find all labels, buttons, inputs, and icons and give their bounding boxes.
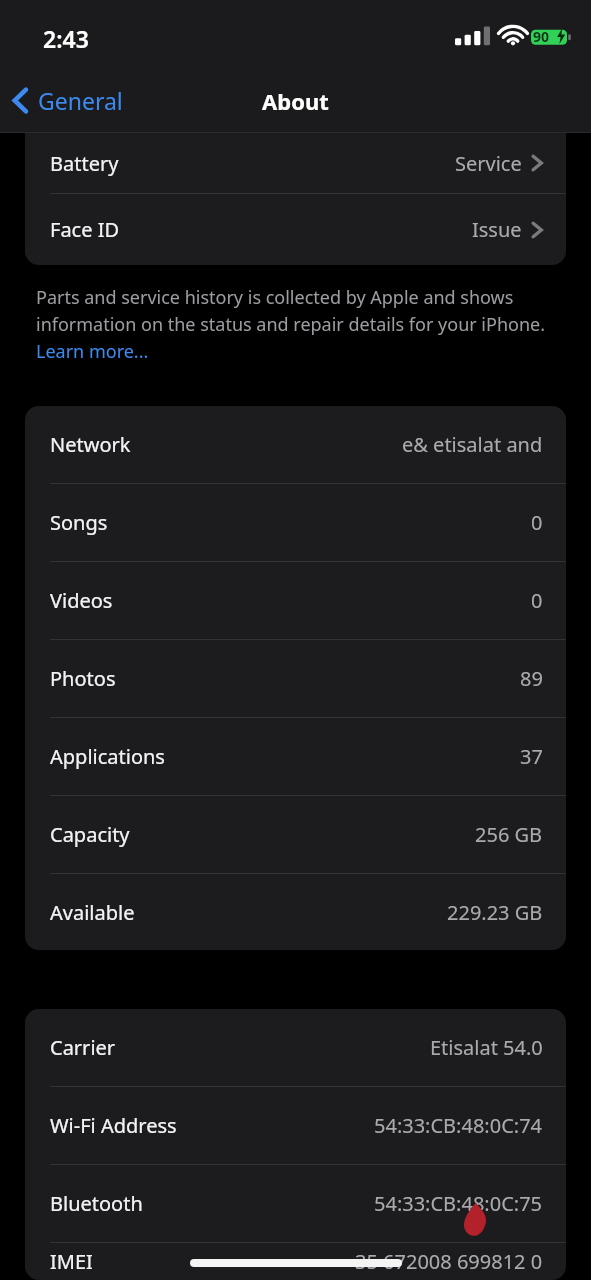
- staticText: 256 GB: [475, 821, 543, 848]
- staticText: General: [38, 85, 123, 116]
- staticText: 90: [533, 27, 550, 46]
- button[interactable]: Available: [25, 874, 566, 950]
- staticText: e& etisalat and: [402, 431, 543, 458]
- staticText: Carrier: [50, 1034, 116, 1061]
- staticText: 54:33:CB:48:0C:74: [374, 1112, 543, 1139]
- staticText: 89: [520, 665, 543, 692]
- button[interactable]: Back to General: [0, 79, 133, 122]
- button[interactable]: Face ID: [25, 194, 566, 265]
- staticText: 229.23 GB: [447, 899, 543, 926]
- staticText: Songs: [50, 509, 108, 536]
- staticText: Face ID: [50, 216, 120, 243]
- button[interactable]: Bluetooth: [25, 1165, 566, 1242]
- button[interactable]: Photos: [25, 640, 566, 717]
- staticText: Photos: [50, 665, 116, 692]
- staticText: Capacity: [50, 821, 130, 848]
- staticText: Network: [50, 431, 131, 458]
- button[interactable]: Capacity: [25, 796, 566, 873]
- staticText: IMEI: [50, 1248, 93, 1275]
- staticText: 0: [531, 509, 543, 536]
- button[interactable]: Applications: [25, 718, 566, 795]
- staticText: 35 672008 699812 0: [355, 1248, 543, 1275]
- staticText: Bluetooth: [50, 1190, 143, 1217]
- staticText: Etisalat 54.0: [430, 1034, 543, 1061]
- staticText: Issue: [472, 216, 522, 243]
- staticText: Wi-Fi Address: [50, 1112, 177, 1139]
- staticText: 37: [520, 743, 543, 770]
- staticText: Parts and service history is collected b…: [36, 285, 561, 363]
- staticText: Service: [455, 150, 522, 177]
- staticText: 2:43: [43, 23, 89, 54]
- staticText: Videos: [50, 587, 113, 614]
- button[interactable]: Videos: [25, 562, 566, 639]
- button[interactable]: Battery: [25, 133, 566, 193]
- button[interactable]: Carrier: [25, 1009, 566, 1086]
- staticText: About: [262, 86, 329, 116]
- staticText: Available: [50, 899, 135, 926]
- staticText: Applications: [50, 743, 165, 770]
- button[interactable]: Songs: [25, 484, 566, 561]
- staticText: 54:33:CB:48:0C:75: [374, 1190, 543, 1217]
- button[interactable]: IMEI: [25, 1243, 566, 1280]
- button[interactable]: Wi-Fi Address: [25, 1087, 566, 1164]
- button[interactable]: Network: [25, 406, 566, 483]
- staticText: Battery: [50, 150, 119, 177]
- staticText: 0: [531, 587, 543, 614]
